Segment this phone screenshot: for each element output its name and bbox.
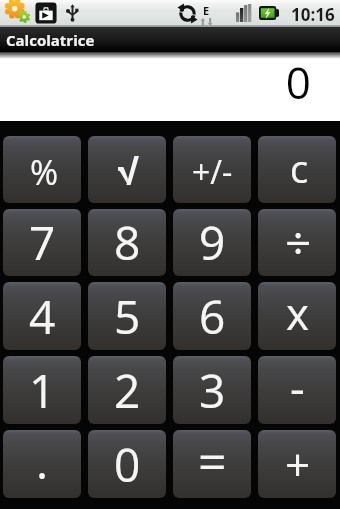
staticText: 6 [199, 285, 226, 348]
button[interactable]: 5 [88, 282, 166, 350]
button[interactable]: c [258, 136, 336, 203]
staticText: 3 [199, 359, 226, 422]
staticText: 5 [114, 285, 141, 348]
staticText: 9 [199, 211, 226, 274]
staticText: - [290, 356, 305, 419]
staticText: +/- [192, 150, 233, 194]
button[interactable]: = [173, 430, 251, 498]
button[interactable]: +/- [173, 136, 251, 203]
button[interactable]: 0 [88, 430, 166, 498]
button[interactable]: + [258, 430, 336, 498]
button[interactable]: ÷ [258, 209, 336, 276]
staticText: . [36, 430, 49, 493]
staticText: x [286, 283, 310, 343]
staticText: 7 [29, 211, 56, 274]
staticText: + [285, 434, 311, 494]
button[interactable] [88, 136, 166, 203]
button[interactable]: x [258, 282, 336, 350]
button[interactable]: 2 [88, 356, 166, 424]
staticText: % [30, 149, 59, 195]
staticText: E [203, 3, 210, 18]
button[interactable]: . [3, 430, 81, 498]
button[interactable]: 4 [3, 282, 81, 350]
staticText: Calcolatrice [6, 30, 95, 50]
button[interactable]: % [3, 136, 81, 203]
staticText: 0 [285, 52, 311, 112]
button[interactable]: - [258, 356, 336, 424]
staticText: c [290, 142, 309, 194]
staticText: ÷ [285, 211, 312, 274]
staticText: = [198, 430, 227, 495]
staticText: 8 [114, 211, 141, 274]
button[interactable]: 1 [3, 356, 81, 424]
staticText: 10:16 [291, 3, 335, 26]
staticText: 1 [29, 359, 56, 422]
button[interactable]: 8 [88, 209, 166, 276]
button[interactable]: 7 [3, 209, 81, 276]
button[interactable]: 9 [173, 209, 251, 276]
staticText: 4 [29, 285, 56, 348]
staticText: 0 [114, 433, 141, 496]
staticText: 2 [114, 359, 141, 422]
button[interactable]: 6 [173, 282, 251, 350]
button[interactable]: 3 [173, 356, 251, 424]
